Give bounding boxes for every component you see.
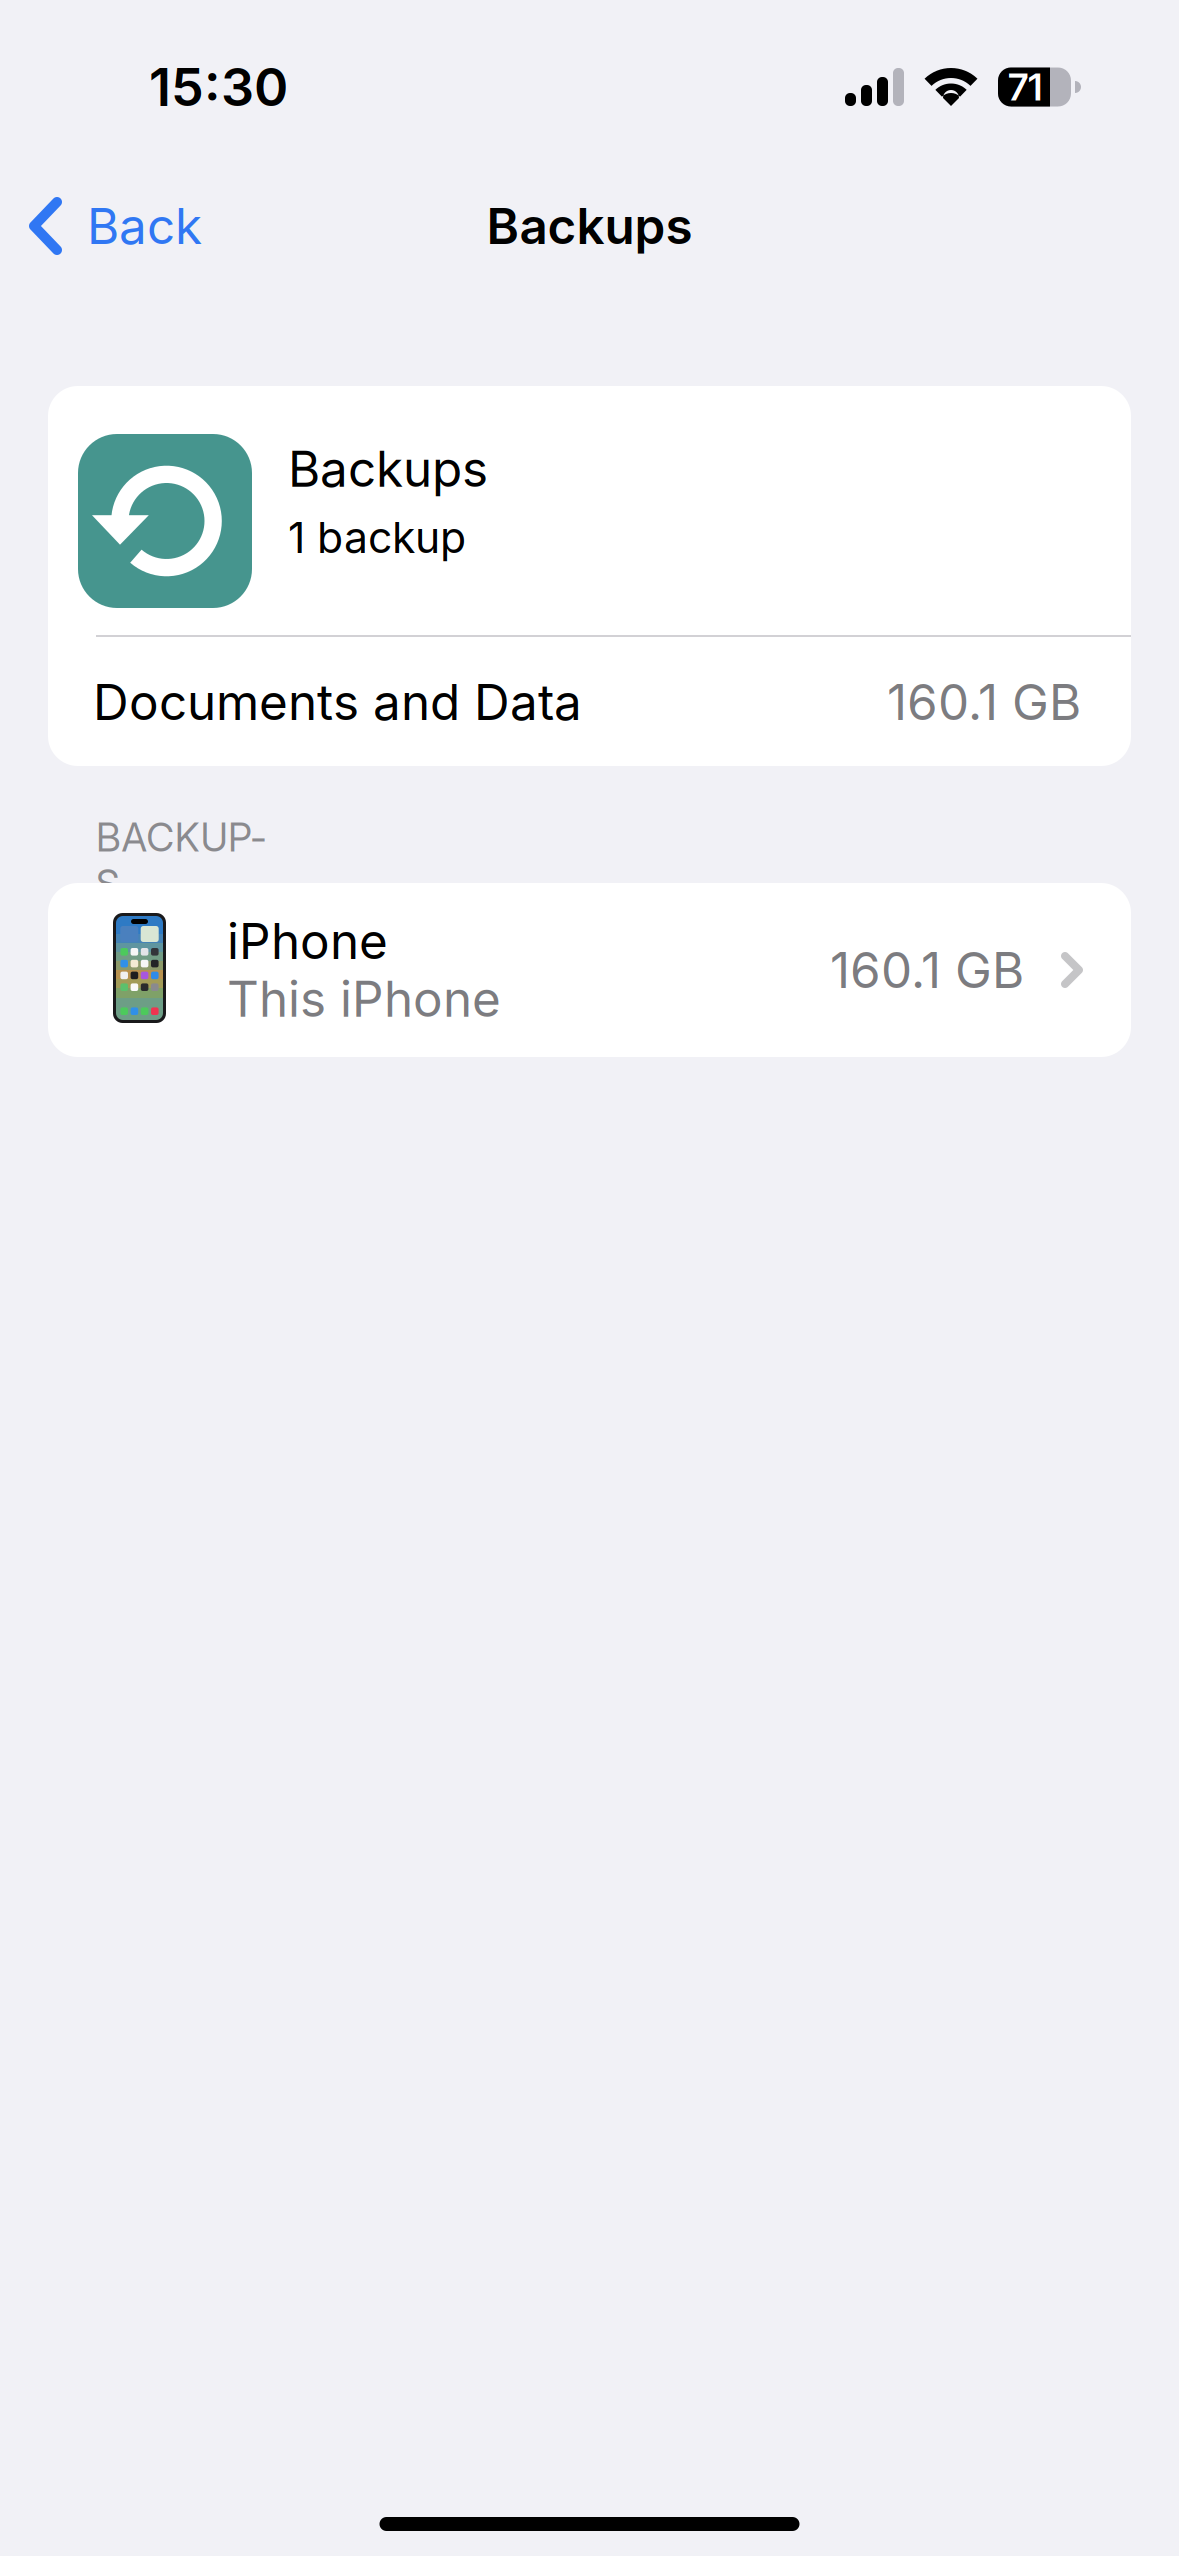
staticText: Documents and Data: [93, 672, 582, 732]
staticText: 1 backup: [288, 512, 466, 563]
staticText: Backups: [288, 439, 488, 499]
staticText: This iPhone: [227, 969, 501, 1029]
staticText: 15:30: [149, 55, 288, 118]
staticText: Backups: [486, 196, 692, 256]
staticText: 71: [1008, 64, 1043, 110]
staticText: 160.1 GB: [887, 672, 1081, 732]
staticText: 160.1 GB: [830, 940, 1024, 1000]
staticText: Back: [87, 196, 202, 256]
button[interactable]: iPhone: [48, 883, 1131, 1057]
staticText: iPhone: [227, 911, 388, 971]
button[interactable]: Back: [0, 178, 220, 274]
staticText: BACKUPS: [96, 814, 265, 908]
